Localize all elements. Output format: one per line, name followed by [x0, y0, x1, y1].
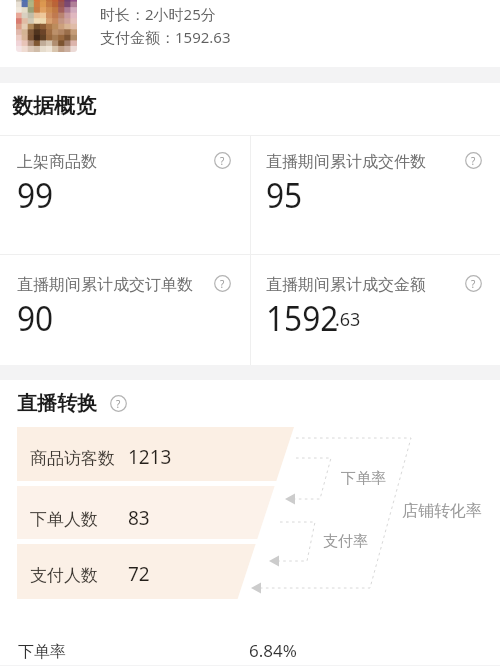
- button[interactable]: 直播期间累计成交订单数: [11, 266, 229, 332]
- staticText: 直播期间累计成交件数: [266, 152, 426, 172]
- staticText: 支付人数: [30, 565, 98, 586]
- staticText: 直播期间累计成交订单数: [17, 275, 193, 295]
- staticText: 95: [266, 171, 303, 219]
- button[interactable]: 上架商品数: [11, 143, 229, 209]
- staticText: 店铺转化率: [402, 501, 482, 521]
- button[interactable]: Help: [214, 275, 231, 292]
- button[interactable]: 直播期间累计成交件数: [260, 143, 478, 209]
- button[interactable]: Help: [110, 395, 127, 412]
- staticText: 支付率: [323, 532, 368, 551]
- button[interactable]: Help: [465, 152, 482, 169]
- button[interactable]: Help: [214, 152, 231, 169]
- staticText: ?: [220, 277, 225, 291]
- staticText: ?: [116, 397, 121, 411]
- button[interactable]: 时长：2小时25分: [0, 0, 500, 67]
- staticText: 数据概览: [12, 93, 96, 119]
- button[interactable]: 商品访客数: [0, 448, 500, 472]
- button[interactable]: 直播期间累计成交金额: [260, 266, 478, 332]
- staticText: 上架商品数: [17, 152, 97, 172]
- staticText: 时长：2小时25分: [100, 4, 216, 24]
- button[interactable]: 直播转换: [17, 391, 127, 416]
- staticText: 90: [17, 294, 54, 342]
- staticText: 1213: [128, 444, 172, 468]
- button[interactable]: 下单率: [0, 608, 500, 665]
- staticText: ?: [471, 154, 476, 168]
- staticText: 下单率: [18, 642, 66, 662]
- staticText: 下单率: [341, 469, 386, 488]
- staticText: 99: [17, 171, 54, 219]
- staticText: ?: [471, 277, 476, 291]
- staticText: 1592: [266, 294, 339, 342]
- staticText: 商品访客数: [30, 448, 115, 469]
- staticText: 6.84%: [249, 639, 297, 662]
- staticText: 72: [128, 561, 150, 585]
- button[interactable]: 数据概览: [12, 93, 96, 119]
- staticText: 下单人数: [30, 509, 98, 530]
- staticText: 直播期间累计成交金额: [266, 275, 426, 295]
- staticText: 支付金额：1592.63: [100, 27, 231, 47]
- button[interactable]: Help: [465, 275, 482, 292]
- staticText: ?: [220, 154, 225, 168]
- staticText: 直播转换: [17, 391, 97, 416]
- staticText: 83: [128, 505, 150, 529]
- button[interactable]: 下单人数: [0, 509, 500, 533]
- staticText: .63: [335, 307, 361, 332]
- button[interactable]: 支付人数: [0, 565, 500, 589]
